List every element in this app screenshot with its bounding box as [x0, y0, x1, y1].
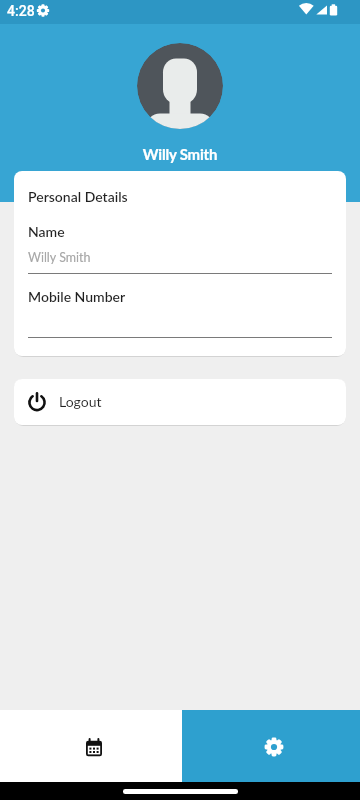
- button[interactable]: [182, 710, 360, 782]
- staticText: Willy Smith: [0, 145, 360, 163]
- staticText: Willy Smith: [28, 250, 91, 265]
- button[interactable]: [0, 710, 182, 782]
- staticText: Personal Details: [28, 188, 128, 205]
- staticText: 4:28: [7, 3, 35, 19]
- staticText: Mobile Number: [28, 288, 126, 305]
- staticText: Logout: [59, 393, 102, 410]
- staticText: Name: [28, 223, 65, 240]
- button[interactable]: Mobile Number: [14, 277, 346, 339]
- button[interactable]: Name: [14, 211, 346, 277]
- button[interactable]: Logout: [14, 379, 346, 425]
